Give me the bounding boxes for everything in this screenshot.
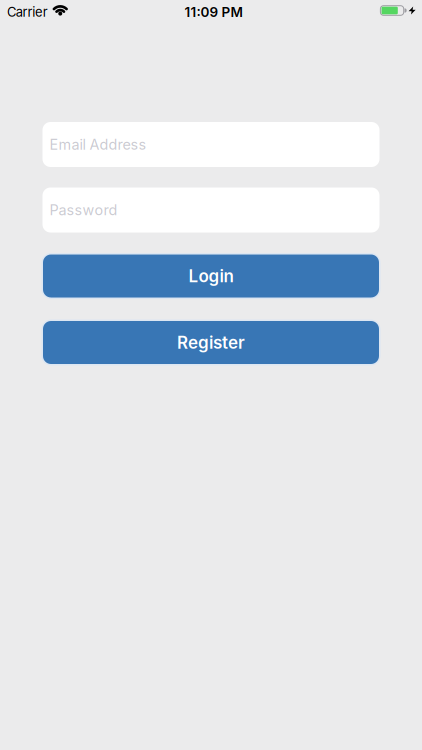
staticText: 11:09 PM: [184, 4, 242, 20]
button[interactable]: Password: [42, 187, 379, 232]
staticText: Email Address: [49, 136, 146, 153]
button[interactable]: Login: [41, 253, 380, 299]
staticText: Carrier: [7, 4, 48, 20]
staticText: Login: [188, 266, 233, 286]
staticText: Register: [177, 332, 245, 353]
button[interactable]: Register: [41, 319, 380, 365]
button[interactable]: Email Address: [42, 122, 379, 167]
staticText: Password: [49, 201, 117, 219]
